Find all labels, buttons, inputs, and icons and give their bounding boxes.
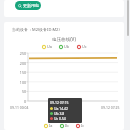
staticText: Uc xyxy=(82,44,87,49)
staticText: 更新用电 xyxy=(23,3,39,8)
button[interactable]: Uc xyxy=(77,44,87,49)
staticText: 150 xyxy=(4,70,26,75)
staticText: Ic xyxy=(81,123,85,128)
staticText: 100 xyxy=(4,80,26,85)
button[interactable]: Ic xyxy=(76,123,85,128)
staticText: Ia xyxy=(49,123,53,128)
button[interactable]: 更新用户 xyxy=(15,1,41,10)
staticText: Ua 14.42 xyxy=(54,106,68,111)
staticText: 0 xyxy=(4,99,26,104)
staticText: Ub 3.8 xyxy=(54,111,65,116)
staticText: 当前设备：M2(设备ID:M2) xyxy=(12,27,60,32)
staticText: 50 xyxy=(4,89,26,94)
staticText: Ib xyxy=(65,123,69,128)
staticText: Uc 0.54 xyxy=(54,116,66,121)
button[interactable]: Ua xyxy=(42,44,52,49)
staticText: 200 xyxy=(4,61,26,66)
button[interactable]: Ib xyxy=(60,123,69,128)
staticText: 250 xyxy=(4,51,26,56)
staticText: Ub xyxy=(64,44,70,49)
button[interactable]: Ia xyxy=(44,123,53,128)
staticText: 09-11 00:04 xyxy=(10,105,29,110)
button[interactable]: Ub xyxy=(59,44,70,49)
staticText: 09-12 07:15 xyxy=(50,100,69,105)
staticText: 09-12 07:25 xyxy=(101,105,120,110)
staticText: Ua xyxy=(47,44,52,49)
staticText: 电压曲线(V) xyxy=(4,36,124,42)
